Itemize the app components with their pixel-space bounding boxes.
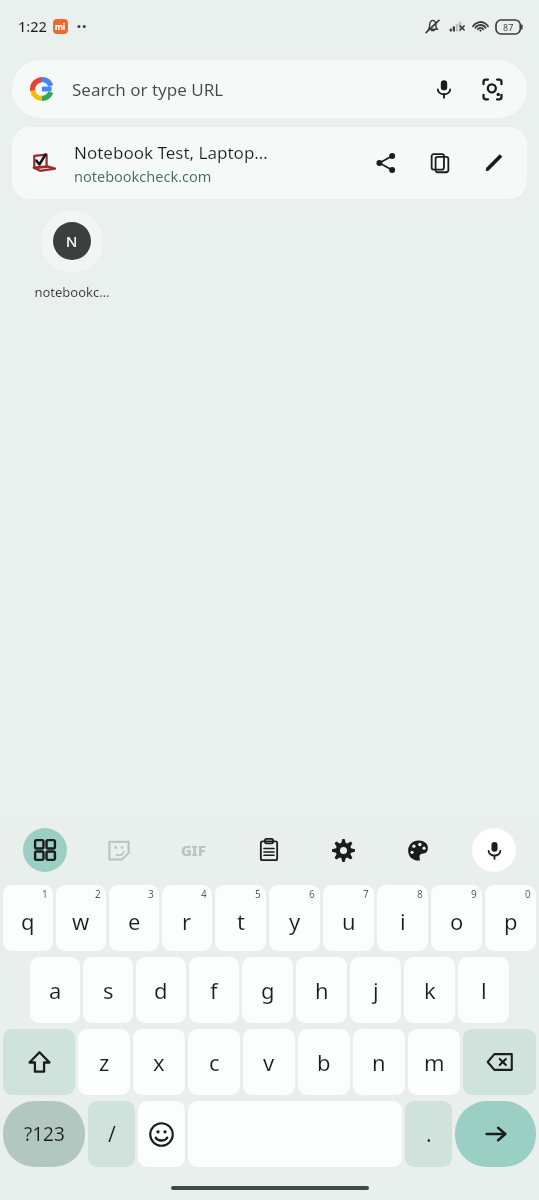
- staticText: 8: [417, 887, 423, 901]
- button[interactable]: GIF: [156, 819, 231, 881]
- staticText: /: [108, 1120, 116, 1149]
- staticText: f: [210, 975, 218, 1005]
- staticText: 4: [201, 887, 207, 901]
- button[interactable]: Share: [367, 144, 405, 182]
- staticText: v: [263, 1047, 275, 1077]
- button[interactable]: .: [405, 1101, 452, 1167]
- staticText: 87: [503, 21, 514, 33]
- staticText: a: [49, 975, 62, 1005]
- button[interactable]: t: [215, 885, 266, 951]
- staticText: h: [315, 975, 329, 1005]
- staticText: 0: [525, 887, 531, 901]
- staticText: b: [317, 1047, 331, 1077]
- staticText: u: [342, 906, 356, 936]
- button[interactable]: y: [269, 885, 320, 951]
- button[interactable]: e: [109, 885, 159, 951]
- staticText: e: [128, 906, 141, 936]
- staticText: z: [99, 1047, 110, 1077]
- button[interactable]: Voice input: [456, 819, 531, 881]
- button[interactable]: Backspace: [463, 1029, 536, 1095]
- staticText: notebookc…: [34, 283, 110, 301]
- button[interactable]: Apps: [8, 819, 82, 881]
- staticText: s: [103, 975, 114, 1005]
- button[interactable]: Voice search: [427, 72, 461, 106]
- staticText: notebookcheck.com: [74, 166, 212, 186]
- button[interactable]: n: [353, 1029, 405, 1095]
- staticText: y: [289, 906, 301, 936]
- button[interactable]: Emoji: [138, 1101, 185, 1167]
- button[interactable]: h: [296, 957, 347, 1023]
- button[interactable]: b: [298, 1029, 350, 1095]
- staticText: GIF: [181, 840, 206, 860]
- staticText: c: [209, 1047, 220, 1077]
- staticText: 3: [148, 887, 154, 901]
- staticText: o: [450, 906, 464, 936]
- staticText: 9: [471, 887, 477, 901]
- button[interactable]: f: [189, 957, 239, 1023]
- button[interactable]: x: [133, 1029, 185, 1095]
- button[interactable]: a: [30, 957, 80, 1023]
- staticText: 7: [363, 887, 369, 901]
- button[interactable]: N: [26, 210, 118, 301]
- button[interactable]: w: [56, 885, 106, 951]
- staticText: g: [261, 975, 275, 1005]
- staticText: Search or type URL: [72, 78, 427, 101]
- staticText: i: [400, 906, 406, 936]
- staticText: p: [504, 906, 518, 936]
- staticText: 6: [309, 887, 315, 901]
- staticText: N: [66, 231, 78, 251]
- staticText: m: [424, 1047, 445, 1077]
- button[interactable]: Search or type URL: [12, 60, 527, 118]
- staticText: 1: [42, 887, 48, 901]
- button[interactable]: d: [136, 957, 186, 1023]
- staticText: d: [154, 975, 168, 1005]
- button[interactable]: Notebook Test, Laptop…: [12, 127, 527, 199]
- button[interactable]: ?123: [3, 1101, 85, 1167]
- staticText: t: [237, 906, 245, 936]
- button[interactable]: Search with camera: [475, 72, 509, 106]
- button[interactable]: q: [3, 885, 53, 951]
- staticText: w: [72, 906, 90, 936]
- button[interactable]: j: [350, 957, 401, 1023]
- staticText: Notebook Test, Laptop…: [74, 141, 268, 164]
- button[interactable]: k: [404, 957, 455, 1023]
- button[interactable]: Clipboard: [231, 819, 306, 881]
- button[interactable]: z: [78, 1029, 130, 1095]
- button[interactable]: Copy: [421, 144, 459, 182]
- staticText: q: [21, 906, 35, 936]
- staticText: l: [481, 975, 487, 1005]
- staticText: k: [424, 975, 436, 1005]
- button[interactable]: v: [243, 1029, 295, 1095]
- staticText: mi: [55, 21, 66, 32]
- staticText: 2: [95, 887, 101, 901]
- button[interactable]: Stickers: [82, 819, 156, 881]
- button[interactable]: Shift: [3, 1029, 75, 1095]
- button[interactable]: l: [458, 957, 509, 1023]
- button[interactable]: p: [485, 885, 536, 951]
- staticText: r: [182, 906, 192, 936]
- button[interactable]: c: [188, 1029, 240, 1095]
- staticText: x: [153, 1047, 165, 1077]
- button[interactable]: o: [431, 885, 482, 951]
- button[interactable]: i: [377, 885, 428, 951]
- staticText: j: [373, 975, 379, 1005]
- button[interactable]: r: [162, 885, 212, 951]
- button[interactable]: s: [83, 957, 133, 1023]
- button[interactable]: Go: [455, 1101, 536, 1167]
- staticText: 5: [255, 887, 261, 901]
- button[interactable]: g: [242, 957, 293, 1023]
- button[interactable]: m: [408, 1029, 460, 1095]
- staticText: ?123: [24, 1121, 65, 1147]
- button[interactable]: Themes: [381, 819, 456, 881]
- button[interactable]: Edit: [475, 144, 513, 182]
- staticText: 1:22: [18, 16, 47, 36]
- button[interactable]: Settings: [306, 819, 381, 881]
- staticText: .: [426, 1120, 432, 1149]
- button[interactable]: u: [323, 885, 374, 951]
- staticText: n: [372, 1047, 386, 1077]
- button[interactable]: /: [88, 1101, 135, 1167]
